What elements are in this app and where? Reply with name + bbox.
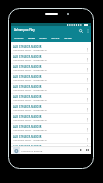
button[interactable]: Nothing is playing	[11, 146, 91, 154]
button[interactable]: ALB 33YGBCR-M40D3R	[11, 64, 91, 74]
button[interactable]: Track options	[85, 47, 90, 52]
button[interactable]: ALB 33YGBCR-M40D3R	[11, 54, 91, 64]
staticText: ALB 33YGBCR-M40D3R	[13, 65, 42, 69]
button[interactable]: Track options	[85, 117, 90, 122]
button[interactable]: ALB 33YGBCR-M40D3R	[11, 74, 91, 84]
button[interactable]: ALB 33YGBCR-M40D3R	[11, 44, 91, 54]
button[interactable]: Track options	[85, 107, 90, 112]
button[interactable]: ALB 33YGBCR-M40D3R	[11, 94, 91, 104]
button[interactable]: ALB 33YGBCR-M40D3R	[11, 134, 91, 144]
staticText: Unknown artist - Yesterday R	[13, 138, 47, 141]
staticText: Unknown artist - Yesterday R	[13, 128, 47, 131]
staticText: Nothing is playing	[21, 149, 43, 152]
button[interactable]: SONGS	[26, 36, 37, 42]
button[interactable]: ALB 33YGBCR-M40D3R	[11, 124, 91, 134]
button[interactable]: PLAYLISTS	[12, 36, 26, 42]
button[interactable]: Track options	[85, 97, 90, 102]
staticText: Unknown artist - Yesterday R	[13, 48, 47, 51]
button[interactable]: ALB 33YGBCR-M40D3R	[11, 84, 91, 94]
staticText: Ashampoo Play	[14, 28, 35, 32]
staticText: Unknown artist - Yesterday R	[13, 108, 47, 111]
staticText: ALB 33YGBCR-M40D3R	[13, 135, 42, 139]
staticText: SONGS	[28, 36, 35, 39]
button[interactable]: Search	[77, 27, 84, 34]
button[interactable]: Track options	[85, 127, 90, 132]
button[interactable]: Play	[78, 147, 84, 153]
button[interactable]: GENRES	[62, 36, 74, 42]
staticText: ALB 33YGBCR-M40D3R	[13, 105, 42, 109]
button[interactable]: ALB 33YGBCR-M40D3R	[11, 114, 91, 124]
staticText: Unknown artist - Yesterday R	[13, 78, 47, 81]
button[interactable]: Track options	[85, 67, 90, 72]
staticText: ALBUMS	[51, 36, 60, 39]
staticText: Unknown artist - Yesterday R	[13, 58, 47, 61]
staticText: Unknown artist - Yesterday R	[13, 68, 47, 71]
staticText: ALB 33YGBCR-M40D3R	[13, 115, 42, 119]
button[interactable]: Track options	[85, 137, 90, 142]
staticText: ARTISTS	[39, 36, 47, 39]
staticText: Unknown artist - Yesterday R	[13, 118, 47, 121]
button[interactable]: ALB 33YGBCR-M40D3R	[11, 144, 91, 146]
staticText: Unknown artist - Yesterday R	[13, 98, 47, 101]
button[interactable]: ALB 33YGBCR-M40D3R	[11, 104, 91, 114]
button[interactable]: ARTISTS	[37, 36, 49, 42]
staticText: ALB 33YGBCR-M40D3R	[13, 95, 42, 99]
staticText: ALB 33YGBCR-M40D3R	[13, 145, 42, 146]
staticText: ALB 33YGBCR-M40D3R	[13, 55, 42, 59]
button[interactable]: Next track	[84, 147, 90, 153]
staticText: ALB 33YGBCR-M40D3R	[13, 85, 42, 89]
button[interactable]: Track options	[85, 87, 90, 92]
button[interactable]: More options	[84, 27, 91, 34]
staticText: PLAYLISTS	[14, 36, 24, 39]
button[interactable]: Track options	[85, 77, 90, 82]
button[interactable]: Track options	[85, 57, 90, 62]
staticText: GENRES	[64, 36, 72, 39]
button[interactable]: Track options	[85, 144, 90, 146]
staticText: ALB 33YGBCR-M40D3R	[13, 75, 42, 79]
staticText: ALB 33YGBCR-M40D3R	[13, 45, 42, 49]
staticText: Unknown artist - Yesterday R	[13, 88, 47, 91]
button[interactable]: ALBUMS	[49, 36, 62, 42]
staticText: ALB 33YGBCR-M40D3R	[13, 125, 42, 129]
